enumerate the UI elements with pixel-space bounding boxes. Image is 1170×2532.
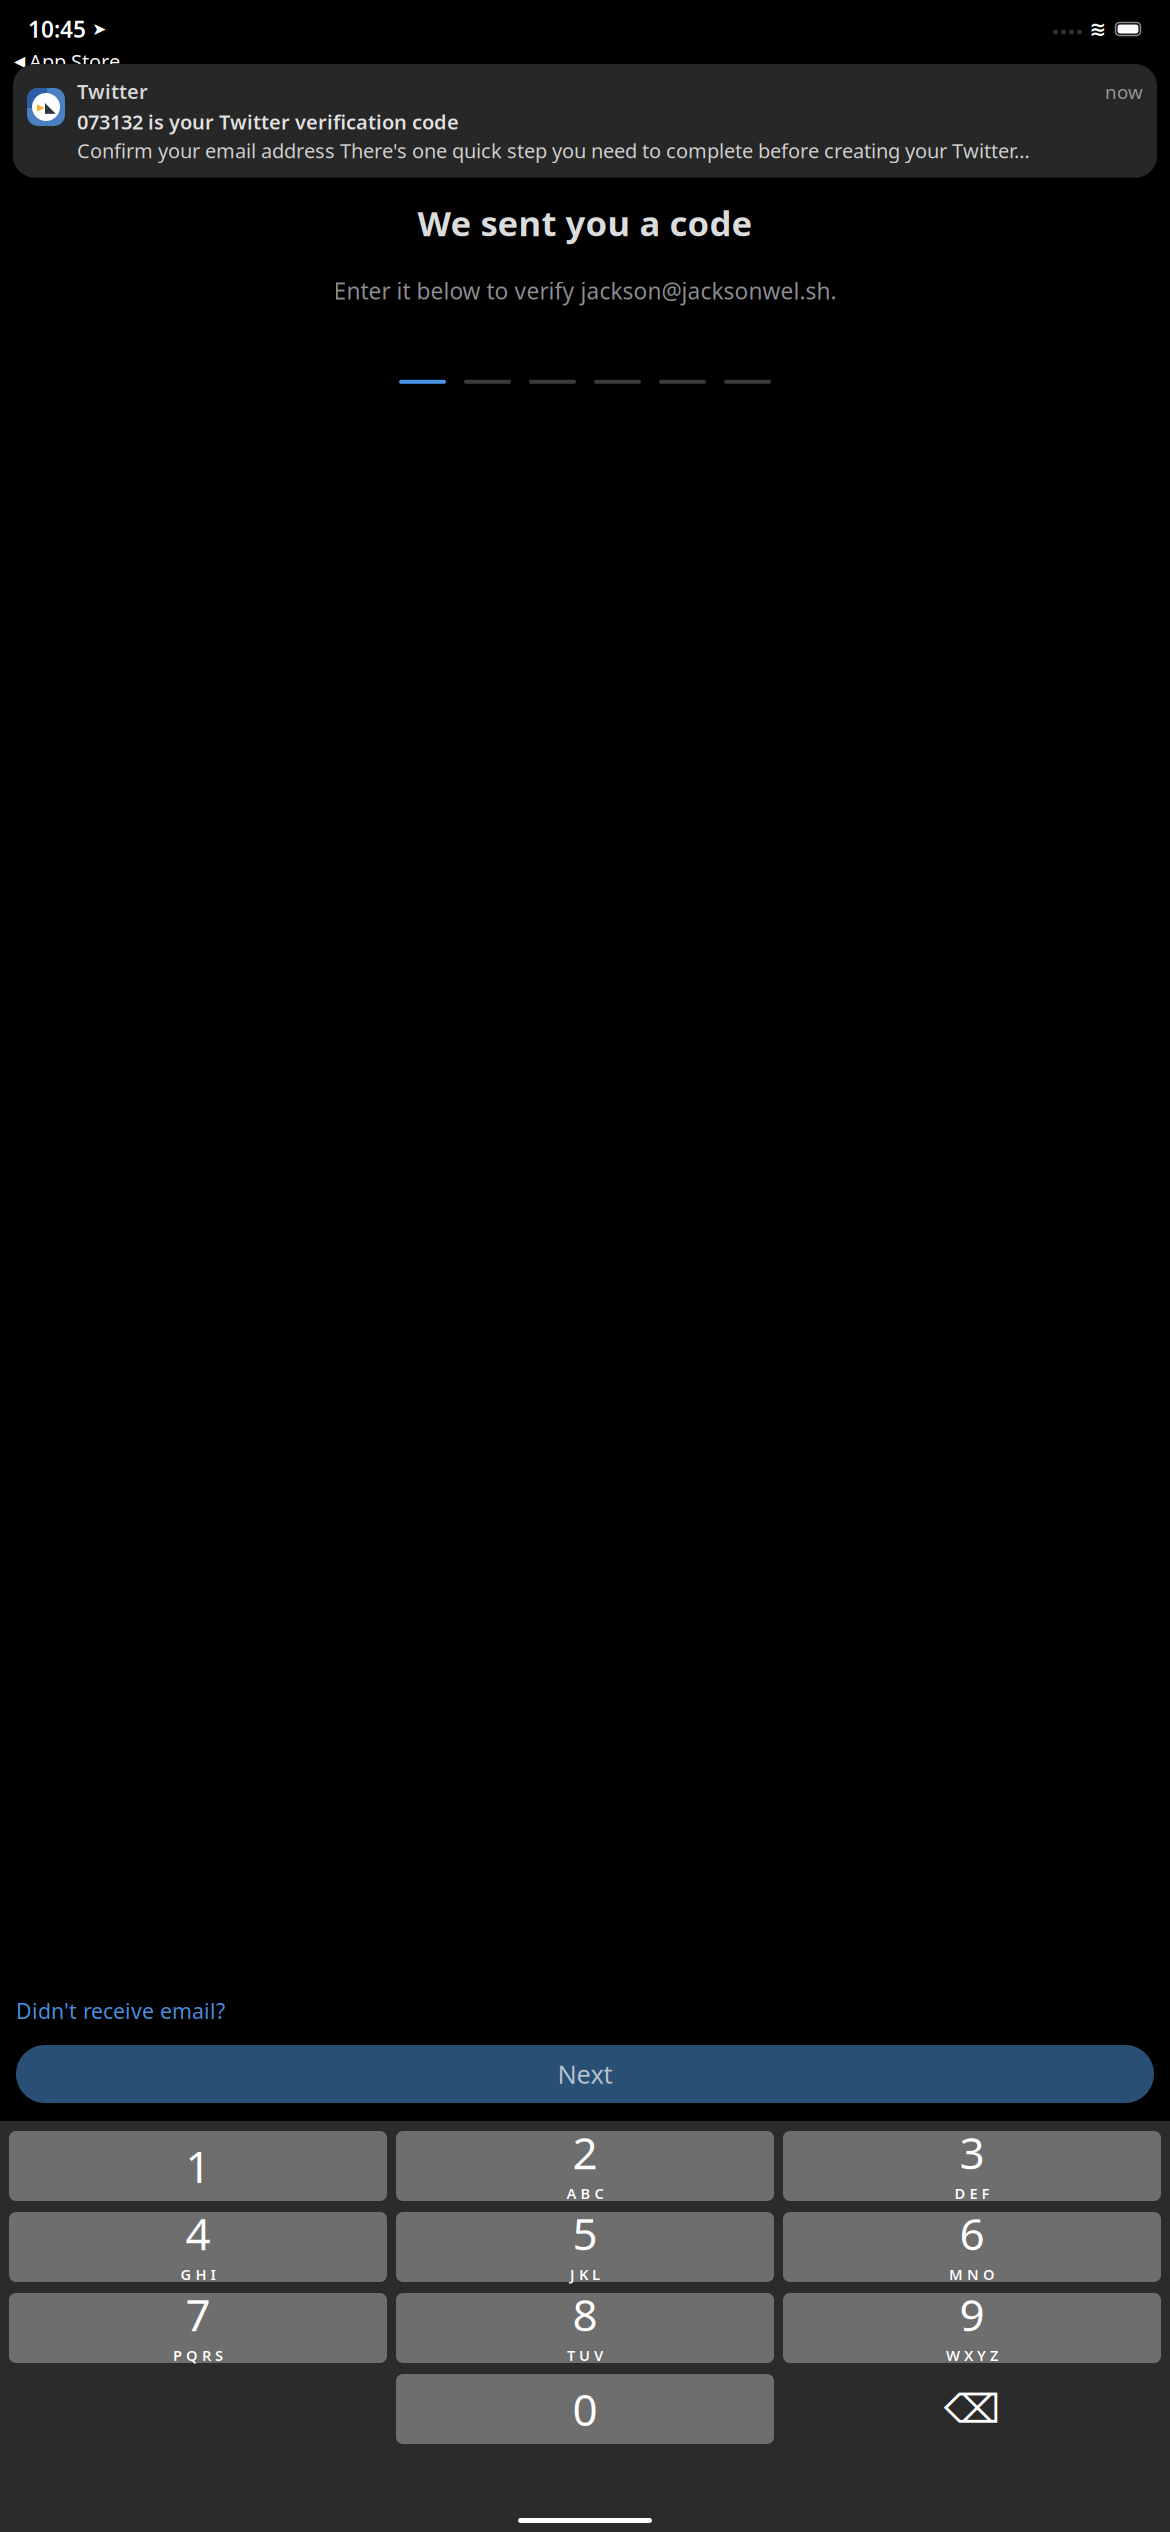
staticText: D E F [954, 2183, 989, 2203]
staticText: 0 [572, 2380, 597, 2438]
staticText: now [1105, 79, 1143, 104]
staticText: A B C [566, 2183, 603, 2203]
button[interactable]: 0 [396, 2374, 774, 2444]
staticText: 5 [572, 2204, 597, 2262]
staticText: ▶ [36, 101, 44, 113]
staticText: 6 [959, 2204, 984, 2262]
button[interactable]: 6 [783, 2212, 1161, 2282]
staticText: Didn't receive email? [16, 1997, 225, 2025]
staticText: W X Y Z [946, 2345, 998, 2365]
button[interactable]: Didn't receive email? [16, 1997, 225, 2025]
button[interactable]: 2 [396, 2131, 774, 2201]
staticText: 2 [572, 2123, 597, 2181]
button[interactable]: 9 [783, 2293, 1161, 2363]
staticText: ◀ [14, 53, 25, 70]
staticText: ⌫ [943, 2386, 1000, 2432]
staticText: ➤ [92, 19, 107, 39]
staticText: 1 [185, 2137, 210, 2195]
staticText: M N O [949, 2264, 995, 2284]
staticText: 4 [185, 2204, 210, 2262]
staticText: 9 [959, 2285, 984, 2343]
staticText: J K L [570, 2264, 600, 2284]
button[interactable]: 7 [9, 2293, 387, 2363]
staticText: P Q R S [173, 2345, 223, 2365]
button[interactable]: 5 [396, 2212, 774, 2282]
staticText: Twitter [77, 78, 148, 105]
button[interactable]: Next [16, 2045, 1154, 2103]
staticText: Enter it below to verify jackson@jackson… [333, 276, 836, 306]
staticText: 7 [185, 2285, 210, 2343]
button[interactable]: ▶ [13, 64, 1157, 178]
staticText: T U V [567, 2345, 603, 2365]
staticText: G H I [180, 2264, 215, 2284]
staticText: 8 [572, 2285, 597, 2343]
staticText: App Store [29, 48, 120, 75]
staticText: 10:45 [28, 14, 86, 44]
staticText: Confirm your email address There's one q… [77, 137, 1030, 164]
staticText: 3 [959, 2123, 984, 2181]
staticText: ◣ [44, 99, 55, 115]
button[interactable]: Delete [783, 2374, 1161, 2444]
button[interactable]: 4 [9, 2212, 387, 2282]
button[interactable]: 1 [9, 2131, 387, 2201]
staticText: Next [557, 2057, 612, 2091]
staticText: 073132 is your Twitter verification code [77, 109, 459, 135]
button[interactable]: 8 [396, 2293, 774, 2363]
staticText: ≋ [1089, 18, 1106, 40]
staticText: We sent you a code [417, 200, 752, 246]
button[interactable]: 3 [783, 2131, 1161, 2201]
